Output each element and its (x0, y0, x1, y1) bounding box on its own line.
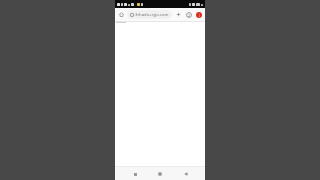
button[interactable]: 3rhadru.iyjo.com (127, 10, 172, 19)
staticText: 3rhadru.iyjo.com (135, 12, 169, 18)
button[interactable]: New tab (174, 10, 183, 19)
button[interactable]: Switch tabs (184, 10, 193, 19)
staticText: 2 (188, 13, 190, 18)
button[interactable]: Back (180, 168, 192, 180)
button[interactable]: Home (154, 168, 166, 180)
button[interactable]: Home (117, 10, 126, 19)
button[interactable]: More options (194, 10, 203, 19)
button[interactable]: Recent apps (129, 168, 141, 180)
